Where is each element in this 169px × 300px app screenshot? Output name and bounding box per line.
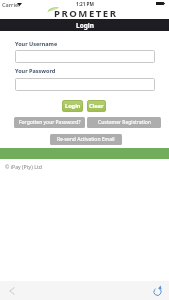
staticText: Clear <box>89 102 104 110</box>
staticText: Login <box>65 102 81 110</box>
button[interactable]: Customer Registration <box>87 117 161 128</box>
staticText: Re-send Activation Email <box>57 136 115 143</box>
button[interactable]: Re-send Activation Email <box>50 134 122 145</box>
staticText: Customer Registration <box>98 119 151 126</box>
staticText: Carrier <box>2 1 21 9</box>
staticText: Your Username <box>15 40 58 47</box>
staticText: Login <box>76 21 94 30</box>
button[interactable]: Forgotten your Password? <box>14 117 85 128</box>
staticText: © iPay (Pty) Ltd <box>5 163 42 170</box>
button[interactable] <box>15 78 155 91</box>
button[interactable]: Clear <box>87 100 106 112</box>
button[interactable] <box>15 50 155 63</box>
staticText: 1:21 PM <box>76 1 94 7</box>
staticText: Your Password <box>15 67 56 74</box>
staticText: PROMETER <box>54 7 118 20</box>
button[interactable]: Login <box>62 100 83 112</box>
button[interactable]: Reload <box>147 281 167 300</box>
button[interactable]: Back <box>2 281 22 300</box>
staticText: Forgotten your Password? <box>19 119 81 126</box>
